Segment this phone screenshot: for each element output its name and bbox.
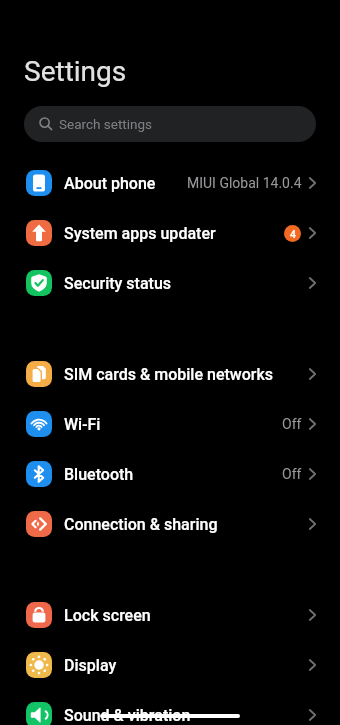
staticText: Connection & sharing: [64, 515, 218, 534]
staticText: Security status: [64, 274, 172, 293]
staticText: System apps updater: [64, 224, 216, 243]
button[interactable]: Display: [0, 640, 340, 690]
staticText: Off: [282, 466, 302, 482]
staticText: Off: [282, 416, 302, 432]
button[interactable]: Wi-Fi: [0, 399, 340, 449]
button[interactable]: Security status: [0, 258, 340, 308]
staticText: 4: [290, 228, 296, 240]
staticText: SIM cards & mobile networks: [64, 365, 274, 384]
staticText: Wi-Fi: [64, 415, 101, 434]
button[interactable]: Sound & vibration: [0, 690, 340, 725]
button[interactable]: Bluetooth: [0, 449, 340, 499]
button[interactable]: Search settings: [24, 106, 316, 142]
button[interactable]: Connection & sharing: [0, 499, 340, 549]
staticText: About phone: [64, 174, 156, 193]
staticText: Search settings: [59, 116, 153, 132]
button[interactable]: About phone: [0, 158, 340, 208]
staticText: MIUI Global 14.0.4: [187, 175, 302, 191]
staticText: Sound & vibration: [64, 706, 191, 725]
button[interactable]: Lock screen: [0, 590, 340, 640]
staticText: Bluetooth: [64, 465, 134, 484]
staticText: Display: [64, 656, 117, 675]
staticText: Settings: [24, 55, 127, 88]
button[interactable]: SIM cards & mobile networks: [0, 349, 340, 399]
staticText: Lock screen: [64, 606, 151, 625]
button[interactable]: System apps updater: [0, 208, 340, 258]
